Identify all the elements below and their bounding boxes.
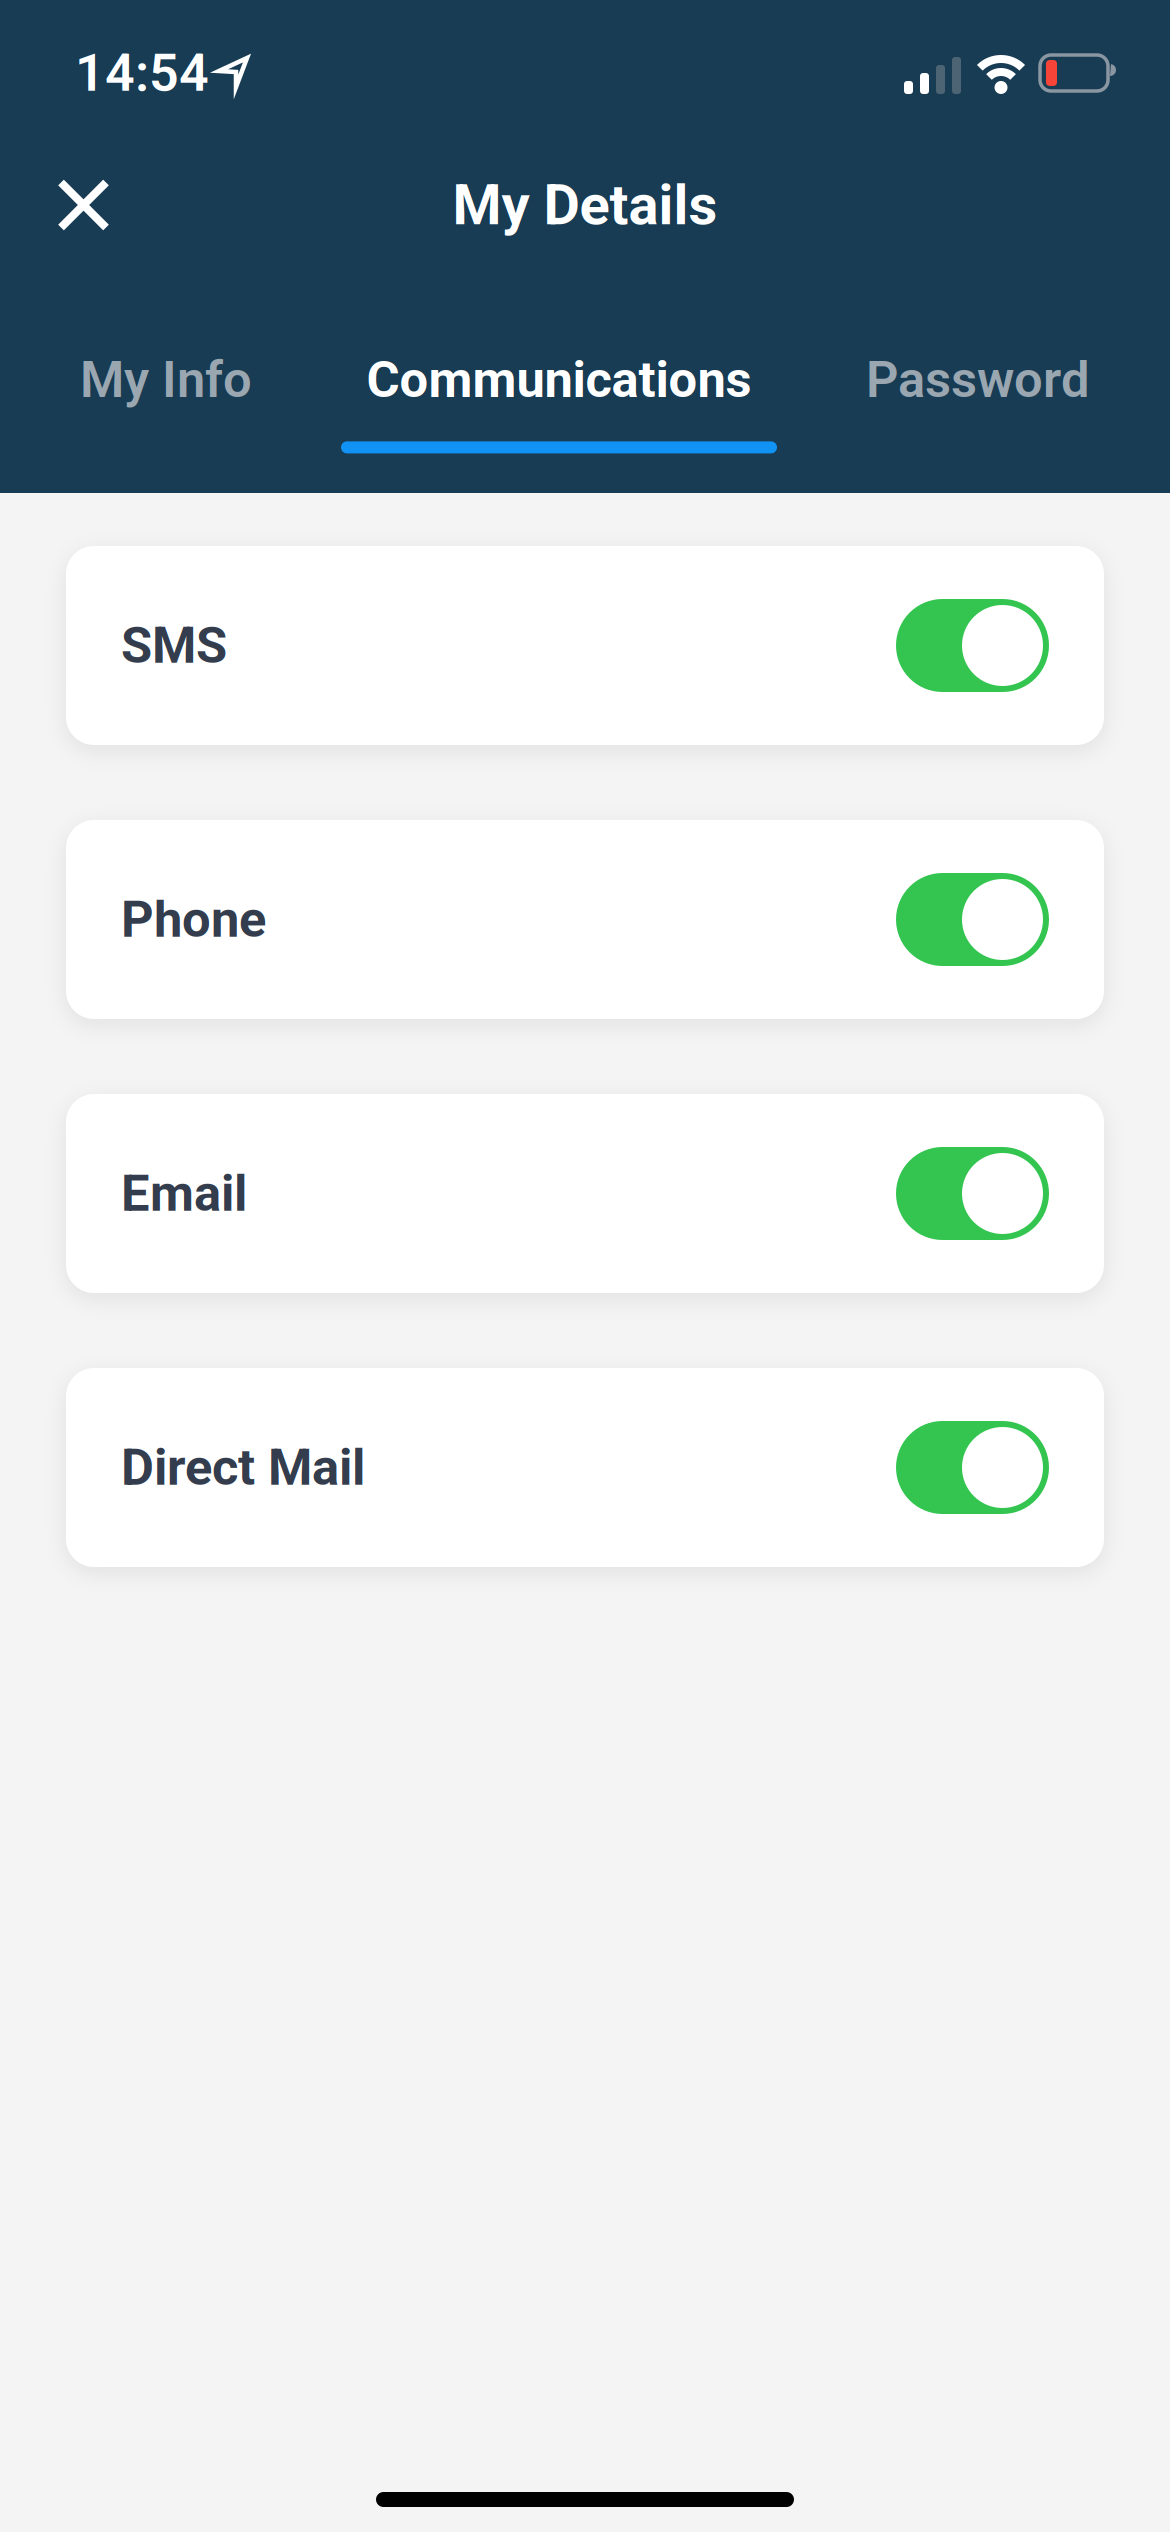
staticText: SMS [121, 616, 227, 675]
button[interactable]: Close [57, 178, 110, 231]
button[interactable]: SMS [66, 546, 1104, 745]
staticText: Password [866, 350, 1090, 409]
button[interactable]: Password [866, 350, 1090, 409]
button[interactable]: Direct Mail [66, 1368, 1104, 1567]
staticText: Email [121, 1164, 247, 1223]
staticText: Direct Mail [121, 1438, 365, 1497]
staticText: 14:54 [75, 42, 209, 103]
button[interactable]: Phone [66, 820, 1104, 1019]
button[interactable]: Email [66, 1094, 1104, 1293]
staticText: Phone [121, 890, 266, 949]
button[interactable]: Communications [341, 350, 777, 453]
button[interactable]: My Info [80, 350, 252, 409]
staticText: Communications [366, 350, 751, 409]
staticText: My Details [452, 172, 717, 238]
staticText: My Info [80, 350, 252, 409]
